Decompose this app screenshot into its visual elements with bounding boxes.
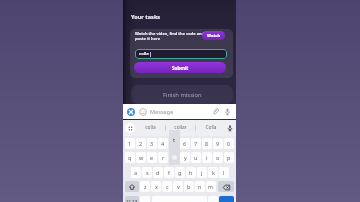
button[interactable]: Shift xyxy=(125,181,139,192)
button[interactable]: colla xyxy=(136,120,165,135)
button[interactable] xyxy=(169,152,179,163)
button[interactable]: Apps xyxy=(125,123,135,133)
staticText: 0 xyxy=(227,140,231,147)
staticText: a xyxy=(134,169,138,176)
staticText: z xyxy=(144,183,147,190)
staticText: 8 xyxy=(205,140,209,147)
button[interactable]: r xyxy=(158,152,168,163)
staticText: 4 xyxy=(161,140,165,147)
staticText: w xyxy=(139,154,144,161)
button[interactable]: 3 xyxy=(147,138,157,149)
staticText: s xyxy=(146,169,149,176)
button[interactable]: 4 xyxy=(158,138,168,149)
button[interactable]: m xyxy=(206,181,216,192)
button[interactable]: i xyxy=(202,152,212,163)
button[interactable]: Finish mission xyxy=(131,85,233,104)
button[interactable]: s xyxy=(142,167,152,178)
button[interactable]: Symbols xyxy=(125,196,139,202)
button[interactable]: w xyxy=(136,152,146,163)
button[interactable]: c xyxy=(162,181,172,192)
button[interactable]: a xyxy=(131,167,141,178)
staticText: 9 xyxy=(216,140,220,147)
button[interactable]: h xyxy=(186,167,196,178)
button[interactable]: j xyxy=(197,167,207,178)
staticText: h xyxy=(189,169,193,176)
staticText: 7 xyxy=(194,140,198,147)
button[interactable]: 9 xyxy=(213,138,223,149)
staticText: c xyxy=(166,183,169,190)
button[interactable]: Attach xyxy=(211,107,220,116)
staticText: 2 xyxy=(139,140,143,147)
staticText: Message xyxy=(150,108,174,116)
staticText: x xyxy=(155,183,158,190)
staticText: b xyxy=(187,183,191,190)
button[interactable]: 8 xyxy=(202,138,212,149)
staticText: collar xyxy=(174,124,187,131)
button[interactable]: 0 xyxy=(224,138,234,149)
staticText: Your tasks xyxy=(131,13,161,21)
button[interactable]: Submit xyxy=(134,62,226,73)
button[interactable]: b xyxy=(184,181,194,192)
button[interactable]: Voice typing xyxy=(225,123,234,132)
staticText: n xyxy=(198,183,202,190)
button[interactable]: Emoji xyxy=(139,108,147,116)
button[interactable]: Colla xyxy=(196,120,225,135)
staticText: t xyxy=(173,136,176,143)
button[interactable]: n xyxy=(195,181,205,192)
button[interactable]: v xyxy=(173,181,183,192)
button[interactable]: d xyxy=(153,167,163,178)
staticText: Colla xyxy=(205,124,217,131)
staticText: Submit xyxy=(172,65,189,71)
staticText: k xyxy=(212,169,215,176)
button[interactable]: y xyxy=(180,152,190,163)
button[interactable]: Close xyxy=(127,108,135,116)
button[interactable]: g xyxy=(175,167,185,178)
staticText: ?123 xyxy=(126,198,138,202)
staticText: colla xyxy=(145,124,156,131)
staticText: l xyxy=(223,169,225,176)
button[interactable]: e xyxy=(147,152,157,163)
staticText: g xyxy=(178,169,182,176)
staticText: f xyxy=(168,169,170,176)
staticText: q xyxy=(128,154,132,161)
button[interactable]: o xyxy=(213,152,223,163)
staticText: m xyxy=(208,183,214,190)
staticText: p xyxy=(227,154,231,161)
staticText: colla xyxy=(139,51,149,57)
button[interactable]: k xyxy=(208,167,218,178)
staticText: j xyxy=(201,169,203,176)
staticText: 6 xyxy=(183,140,187,147)
button[interactable]: 2 xyxy=(136,138,146,149)
button[interactable]: l xyxy=(219,167,229,178)
button[interactable]: Watch xyxy=(202,31,225,40)
button[interactable]: u xyxy=(191,152,201,163)
staticText: o xyxy=(216,154,220,161)
button[interactable]: Enter xyxy=(219,196,234,202)
button[interactable]: z xyxy=(140,181,150,192)
staticText: r xyxy=(162,154,165,161)
button[interactable]: 7 xyxy=(191,138,201,149)
staticText: u xyxy=(194,154,198,161)
button[interactable]: 6 xyxy=(180,138,190,149)
staticText: 3 xyxy=(150,140,154,147)
button[interactable]: Voice input xyxy=(223,107,232,116)
button[interactable]: x xyxy=(151,181,161,192)
button[interactable]: f xyxy=(164,167,174,178)
staticText: y xyxy=(184,154,187,161)
button[interactable]: colla xyxy=(135,49,227,59)
staticText: Finish mission xyxy=(163,91,202,99)
staticText: v xyxy=(177,183,180,190)
button[interactable]: q xyxy=(125,152,135,163)
staticText: e xyxy=(150,154,154,161)
button[interactable]: Backspace xyxy=(218,181,234,192)
staticText: Watch xyxy=(207,33,221,39)
button[interactable]: 1 xyxy=(125,138,135,149)
button[interactable]: p xyxy=(224,152,234,163)
staticText: 1 xyxy=(128,140,132,147)
staticText: Watch the video, find the code and paste… xyxy=(135,31,205,41)
button[interactable]: collar xyxy=(166,120,195,135)
